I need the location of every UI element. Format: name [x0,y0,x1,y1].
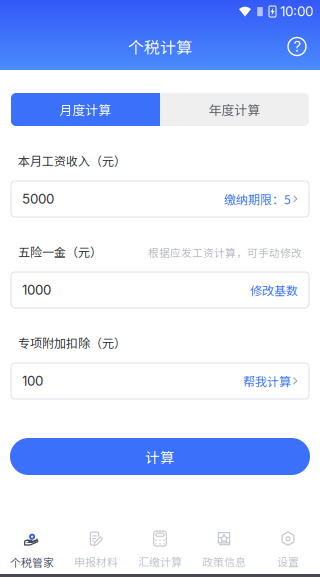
button[interactable]: 汇缴计算 [128,520,192,574]
staticText: 个税管家 [10,554,54,570]
staticText: 个税计算 [128,35,192,58]
staticText: 专项附加扣除（元） [18,334,126,351]
staticText: 汇缴计算 [138,554,182,569]
staticText: 申报材料 [74,554,118,569]
button[interactable]: 帮助 [277,23,317,70]
staticText: 修改基数 [250,281,298,299]
staticText: 帮我计算 [243,372,291,390]
staticText: 本月工资收入（元） [18,152,126,169]
staticText: 5000 [22,191,54,207]
staticText: 年度计算 [208,100,260,119]
staticText: 设置 [277,554,299,569]
staticText: ? [293,38,300,55]
staticText: 10:00 [280,3,313,19]
staticText: 月度计算 [59,100,111,119]
button[interactable]: 政策信息 [192,520,256,574]
staticText: 缴纳期限：5 [224,190,291,208]
button[interactable]: 月度计算 [11,93,160,126]
staticText: 计算 [145,446,175,467]
button[interactable]: 年度计算 [160,93,309,126]
button[interactable]: 缴纳期限：5 [224,181,298,217]
staticText: 五险一金（元） [18,243,102,260]
button[interactable]: 帮我计算 [243,363,298,399]
button[interactable]: 修改基数 [250,272,298,308]
staticText: 根据应发工资计算，可手动修改 [148,245,302,260]
button[interactable]: 计算 [10,438,310,475]
button[interactable]: 申报材料 [64,520,128,574]
staticText: 政策信息 [202,554,246,569]
staticText: 100 [22,373,43,389]
staticText: 1000 [22,282,51,298]
button[interactable]: 设置 [256,520,320,574]
button[interactable]: 个税管家 [0,520,64,574]
